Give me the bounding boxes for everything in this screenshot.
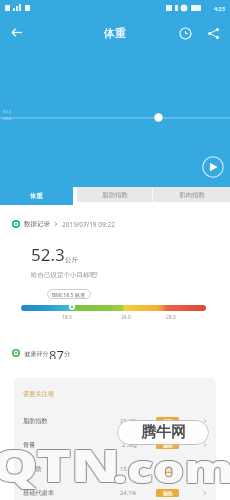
- staticText: 52.3: [31, 243, 65, 266]
- staticText: 数据记录: [24, 220, 50, 228]
- staticText: .com: [113, 442, 230, 495]
- staticText: 24.0: [121, 314, 131, 321]
- staticText: QTN: [0, 434, 122, 494]
- staticText: QTN: [0, 434, 120, 494]
- button[interactable]: 脂肪指数: [23, 409, 207, 433]
- staticText: 分: [64, 350, 71, 358]
- button[interactable]: 蛋白质: [23, 457, 207, 481]
- button[interactable]: Back: [0, 16, 33, 49]
- staticText: 4:23: [214, 5, 225, 12]
- staticText: QTN: [0, 435, 120, 495]
- button[interactable]: 基础代谢率: [23, 481, 207, 500]
- staticText: 2019/07/19 09:22: [62, 220, 115, 229]
- staticText: .com: [112, 440, 230, 493]
- staticText: 15.3%: [120, 465, 137, 473]
- staticText: .com: [114, 441, 230, 494]
- staticText: QTN: [0, 435, 121, 495]
- staticText: 基础代谢率: [23, 489, 54, 497]
- staticText: QTN: [0, 434, 121, 494]
- staticText: 肌肉指数: [179, 191, 205, 199]
- button[interactable]: 脂肪指数: [77, 187, 152, 202]
- staticText: QTN: [0, 435, 122, 495]
- staticText: 28.0: [166, 314, 176, 321]
- staticText: 52.3: [3, 109, 12, 115]
- staticText: 腾牛网: [141, 423, 186, 442]
- staticText: 骨量: [23, 441, 36, 449]
- staticText: 偏低: [163, 466, 173, 472]
- staticText: .com: [113, 440, 230, 493]
- staticText: 蛋白质: [23, 465, 42, 473]
- staticText: 需要关注项: [23, 390, 54, 398]
- button[interactable]: 肌肉指数: [153, 187, 230, 202]
- staticText: 体重: [104, 26, 126, 40]
- staticText: .com: [114, 442, 230, 495]
- staticText: .com: [114, 440, 230, 493]
- button[interactable]: 体重: [0, 187, 73, 205]
- button[interactable]: 数据记录: [12, 218, 230, 230]
- staticText: 偏高: [163, 418, 173, 424]
- staticText: 给自己设定个小目标吧!: [31, 270, 98, 279]
- button[interactable]: History: [171, 19, 199, 47]
- staticText: .com: [113, 441, 230, 494]
- staticText: QTN: [0, 436, 122, 496]
- staticText: BMI:18.5 标准: [52, 291, 86, 298]
- staticText: QTN: [0, 436, 120, 496]
- staticText: .com: [112, 442, 230, 495]
- staticText: 公斤: [65, 256, 78, 264]
- staticText: 偏低: [163, 490, 173, 496]
- staticText: 52.3: [3, 116, 12, 122]
- staticText: 18.5: [62, 314, 72, 321]
- staticText: 脂肪指数: [102, 191, 128, 199]
- button[interactable]: Play: [202, 156, 224, 178]
- staticText: QTN: [0, 436, 121, 496]
- staticText: 2.3kg: [122, 441, 137, 449]
- button[interactable]: 骨量: [23, 433, 207, 457]
- staticText: 脂肪指数: [23, 417, 48, 425]
- staticText: 24.1%: [120, 489, 137, 497]
- button[interactable]: Share: [199, 19, 227, 47]
- staticText: 23.4%: [120, 417, 137, 425]
- staticText: 体重: [30, 192, 43, 200]
- staticText: 87: [49, 346, 64, 359]
- staticText: 偏低: [163, 442, 173, 448]
- staticText: 健康评分: [24, 350, 49, 358]
- staticText: .com: [112, 441, 230, 494]
